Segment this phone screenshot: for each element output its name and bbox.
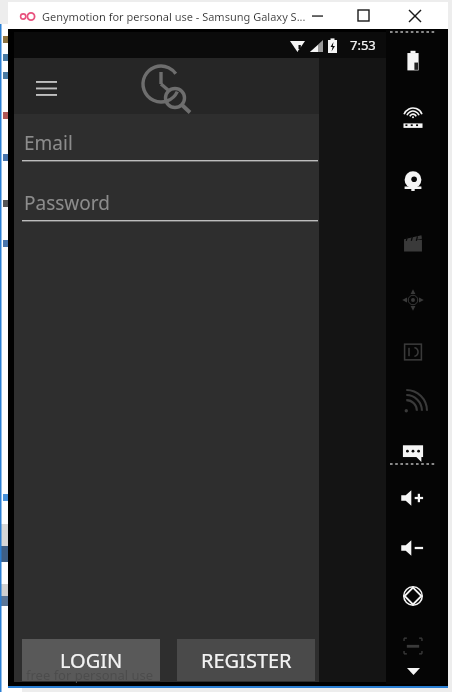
- button[interactable]: Screen recorder: [386, 218, 440, 266]
- button[interactable]: Battery: [386, 38, 440, 86]
- button[interactable]: Scale 1:1: [386, 622, 440, 670]
- staticText: Email: [24, 130, 73, 156]
- button[interactable]: More: [386, 660, 440, 682]
- button[interactable]: Email: [22, 122, 318, 170]
- button[interactable]: SMS: [386, 428, 440, 476]
- button[interactable]: Close: [390, 2, 440, 29]
- button[interactable]: GPS: [386, 98, 440, 146]
- button[interactable]: Open navigation drawer: [26, 68, 66, 108]
- button[interactable]: LOGIN: [22, 639, 160, 681]
- staticText: Genymotion for personal use - Samsung Ga…: [42, 9, 306, 24]
- button[interactable]: Identifiers: [386, 328, 440, 376]
- button[interactable]: D-pad: [386, 276, 440, 324]
- button[interactable]: REGISTER: [177, 639, 315, 681]
- button[interactable]: Volume down: [386, 524, 440, 572]
- staticText: 7:53: [350, 36, 376, 54]
- button[interactable]: Rotate: [386, 572, 440, 620]
- button[interactable]: Volume up: [386, 474, 440, 522]
- button[interactable]: Password: [22, 182, 318, 230]
- staticText: Password: [24, 190, 110, 216]
- staticText: REGISTER: [201, 647, 292, 674]
- button[interactable]: Minimise: [294, 2, 340, 29]
- staticText: LOGIN: [60, 647, 123, 674]
- staticText: free for personal use: [26, 666, 154, 684]
- button[interactable]: Maximise: [340, 2, 386, 29]
- button[interactable]: Camera: [386, 158, 440, 206]
- button[interactable]: Network: [386, 380, 440, 428]
